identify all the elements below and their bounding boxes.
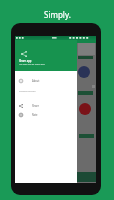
staticText: The best app for clone apps: [19, 63, 46, 66]
staticText: Share app: [19, 59, 32, 63]
staticText: Share: [32, 104, 39, 108]
button[interactable]: About: [15, 76, 77, 85]
staticText: Rate: [32, 113, 38, 117]
staticText: Simply.: [44, 9, 71, 20]
button[interactable]: Share: [15, 101, 77, 110]
staticText: COMMUNICATION: [19, 90, 36, 93]
button[interactable]: Rate: [15, 110, 77, 119]
staticText: About: [32, 79, 40, 83]
other: Share: [21, 51, 27, 57]
